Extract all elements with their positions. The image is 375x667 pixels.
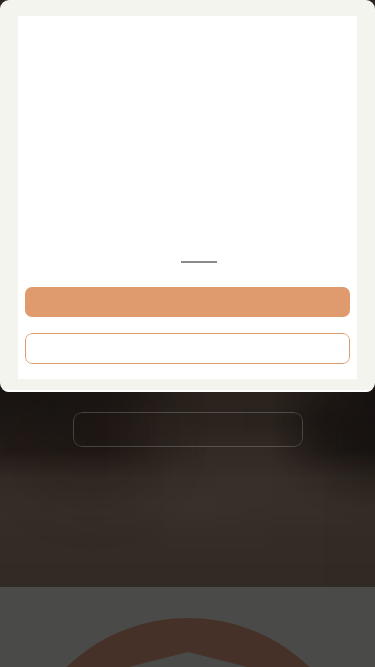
button[interactable]: Cancel — [25, 333, 350, 364]
button[interactable]: Dismiss — [73, 412, 303, 447]
button[interactable]: Continue — [25, 287, 350, 317]
